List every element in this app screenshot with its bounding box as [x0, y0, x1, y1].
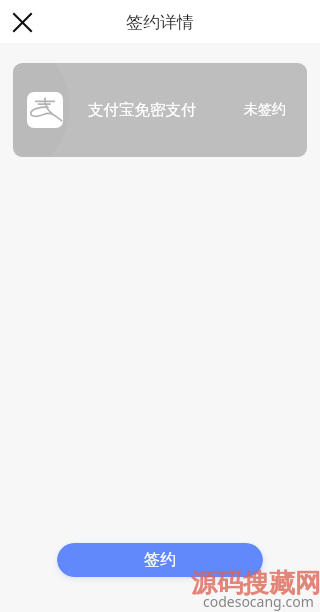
button[interactable]: Close [4, 4, 40, 40]
staticText: codesocang.com [203, 592, 314, 611]
staticText: 未签约 [244, 101, 286, 119]
staticText: 签约 [144, 550, 176, 570]
staticText: 签约详情 [126, 12, 194, 33]
staticText: 支付宝免密支付 [88, 100, 197, 120]
button[interactable]: 签约 [57, 543, 263, 577]
staticText: 源码搜藏网 [191, 567, 320, 600]
button[interactable]: 支付宝免密支付 [13, 63, 307, 157]
